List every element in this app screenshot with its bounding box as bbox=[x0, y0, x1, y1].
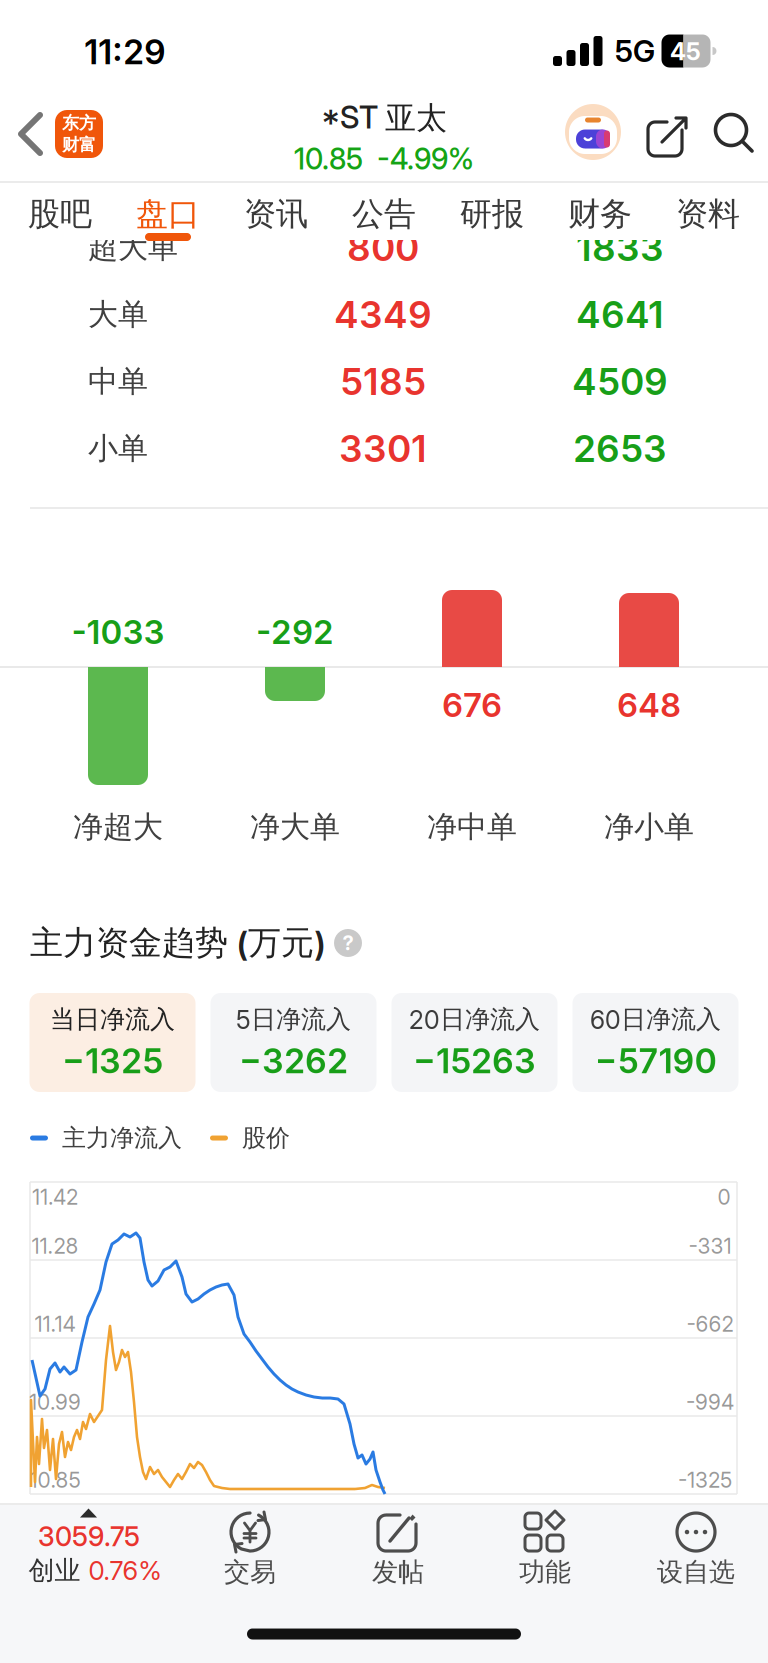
staticText: -662 bbox=[686, 1312, 733, 1336]
button[interactable]: AI 助手 bbox=[565, 104, 621, 160]
staticText: *ST 亚太 bbox=[321, 99, 447, 137]
staticText: 公告 bbox=[352, 194, 416, 234]
button[interactable]: 资料 bbox=[676, 194, 740, 234]
staticText: −15263 bbox=[413, 1041, 536, 1081]
staticText: 10.85 bbox=[29, 1468, 80, 1492]
staticText: 财富 bbox=[62, 134, 96, 155]
staticText: 超大单 bbox=[88, 229, 178, 266]
staticText: −57190 bbox=[594, 1041, 716, 1081]
staticText: 5日净流入 bbox=[236, 1004, 351, 1035]
staticText: 功能 bbox=[519, 1556, 571, 1588]
staticText: 0.76% bbox=[88, 1555, 161, 1586]
staticText: 当日净流入 bbox=[50, 1004, 175, 1035]
button[interactable]: 5日净流入 bbox=[210, 993, 376, 1092]
staticText: -1033 bbox=[71, 612, 164, 651]
button[interactable]: 20日净流入 bbox=[391, 993, 557, 1092]
staticText: 10.99 bbox=[29, 1390, 81, 1414]
staticText: ? bbox=[342, 931, 353, 955]
staticText: 5G bbox=[615, 33, 655, 69]
button[interactable]: 创业板指 bbox=[0, 1504, 180, 1601]
staticText: 3301 bbox=[339, 427, 427, 470]
staticText: 财务 bbox=[568, 194, 632, 234]
button[interactable]: 公告 bbox=[352, 194, 416, 234]
staticText: 小单 bbox=[88, 430, 148, 467]
staticText: 股价 bbox=[228, 1123, 290, 1153]
button[interactable]: 盘口 bbox=[136, 194, 200, 234]
staticText: 4641 bbox=[576, 293, 664, 336]
staticText: 净大单 bbox=[250, 809, 340, 845]
staticText: 大单 bbox=[88, 296, 148, 333]
button[interactable]: 股吧 bbox=[28, 194, 92, 234]
staticText: 60日净流入 bbox=[590, 1004, 721, 1035]
staticText: 676 bbox=[442, 685, 502, 724]
staticText: 4349 bbox=[334, 293, 432, 336]
staticText: 交易 bbox=[224, 1556, 276, 1588]
staticText: 净小单 bbox=[604, 809, 694, 845]
staticText: 11.14 bbox=[34, 1312, 75, 1336]
staticText: −3262 bbox=[239, 1041, 348, 1081]
staticText: 648 bbox=[617, 685, 681, 724]
button[interactable]: 帮助 bbox=[334, 929, 362, 957]
staticText: -292 bbox=[256, 612, 334, 651]
button[interactable]: 功能 bbox=[475, 1503, 615, 1595]
button[interactable]: 研报 bbox=[460, 194, 524, 234]
staticText: 11:29 bbox=[84, 32, 166, 72]
staticText: 5185 bbox=[340, 360, 426, 403]
staticText: 净中单 bbox=[427, 809, 517, 845]
staticText: 4509 bbox=[572, 360, 668, 403]
staticText: 东方 bbox=[62, 113, 96, 133]
staticText: 股吧 bbox=[28, 194, 92, 234]
staticText: 盘口 bbox=[136, 194, 200, 234]
button[interactable]: Back bbox=[17, 112, 45, 156]
staticText: 11.42 bbox=[32, 1185, 78, 1209]
staticText: 主力资金趋势 (万元) bbox=[30, 923, 326, 963]
button[interactable]: Search bbox=[712, 111, 756, 155]
staticText: 3059.75 bbox=[38, 1521, 140, 1552]
staticText: 创业 bbox=[28, 1554, 80, 1586]
button[interactable]: 发帖 bbox=[328, 1503, 468, 1595]
staticText: 0 bbox=[717, 1185, 730, 1209]
staticText: 资讯 bbox=[244, 194, 308, 234]
staticText: 研报 bbox=[460, 194, 524, 234]
staticText: 设自选 bbox=[657, 1556, 735, 1588]
staticText: −1325 bbox=[62, 1041, 163, 1081]
staticText: 资料 bbox=[676, 194, 740, 234]
staticText: 20日净流入 bbox=[409, 1004, 540, 1035]
staticText: 800 bbox=[347, 226, 419, 269]
button[interactable]: Share bbox=[645, 111, 689, 155]
button[interactable]: 东方财富 bbox=[55, 110, 103, 158]
staticText: 发帖 bbox=[372, 1556, 424, 1588]
button[interactable]: 交易 bbox=[180, 1503, 320, 1595]
staticText: 2653 bbox=[573, 427, 667, 470]
button[interactable]: 60日净流入 bbox=[572, 993, 738, 1092]
staticText: 中单 bbox=[88, 363, 148, 400]
staticText: 45 bbox=[670, 37, 701, 66]
button[interactable]: 设自选 bbox=[626, 1503, 766, 1595]
button[interactable]: 资讯 bbox=[244, 194, 308, 234]
staticText: 1833 bbox=[576, 226, 664, 269]
button[interactable]: 财务 bbox=[568, 194, 632, 234]
staticText: -994 bbox=[686, 1390, 734, 1414]
staticText: 10.85 -4.99% bbox=[294, 142, 474, 176]
staticText: -331 bbox=[688, 1234, 731, 1258]
button[interactable]: 当日净流入 bbox=[29, 993, 195, 1092]
staticText: 净超大 bbox=[73, 809, 163, 845]
staticText: -1325 bbox=[678, 1468, 732, 1492]
staticText: 11.28 bbox=[31, 1234, 78, 1258]
staticText: 主力净流入 bbox=[48, 1123, 182, 1153]
